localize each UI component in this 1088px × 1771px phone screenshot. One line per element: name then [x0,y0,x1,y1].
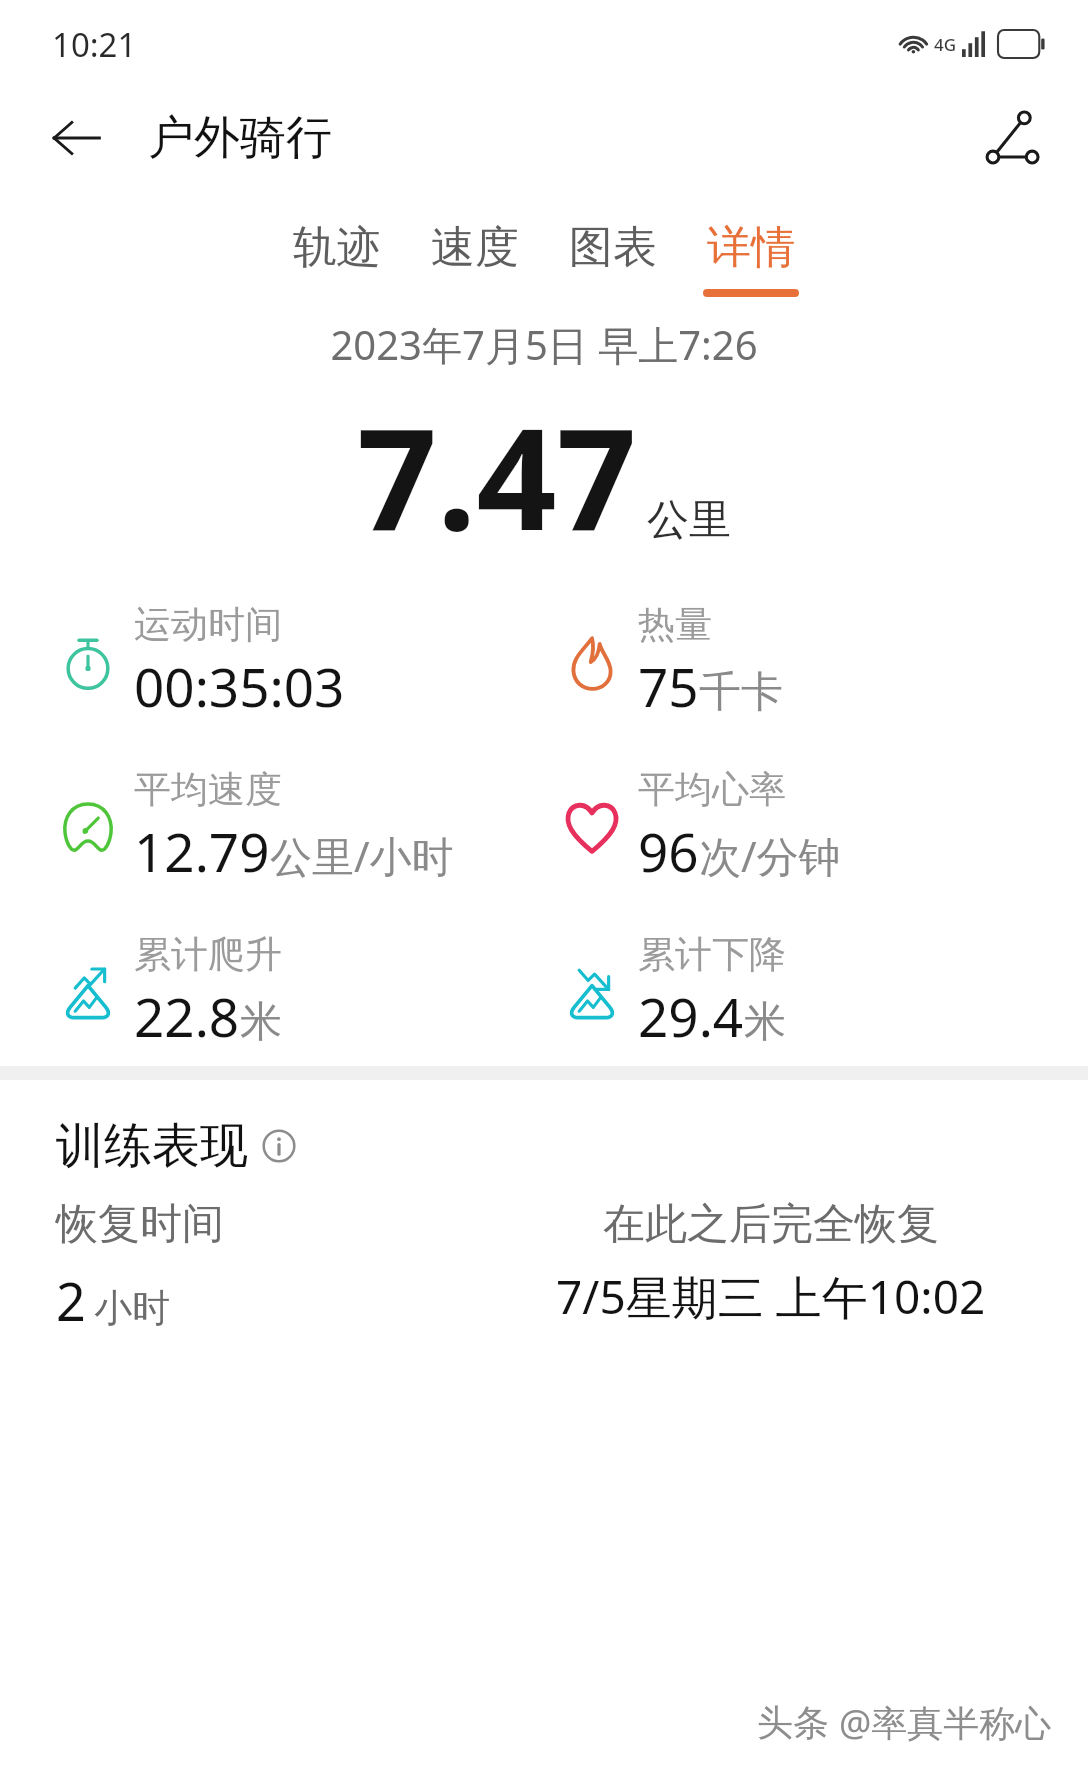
staticText: 2023年7月5日 早上7:26 [0,317,1088,372]
staticText: 米 [744,996,786,1049]
staticText: 2 [56,1265,86,1336]
staticText: @率真半称心 [839,1698,1052,1747]
staticText: 图表 [569,220,657,275]
staticText: 10:21 [52,22,137,67]
staticText: 米 [240,996,282,1049]
staticText: 轨迹 [293,220,381,275]
staticText: 在此之后完全恢复 [603,1198,939,1251]
staticText: 累计下降 [638,931,786,978]
staticText: 平均心率 [638,766,786,813]
button[interactable]: 运动时间 [56,601,345,722]
staticText: 户外骑行 [148,109,332,167]
button[interactable]: 累计下降 [560,931,786,1052]
staticText: 12.79 [134,815,270,887]
other: Info [262,1129,296,1163]
staticText: 累计爬升 [134,931,282,978]
staticText: 千卡 [699,666,783,719]
staticText: 29.4 [638,980,744,1052]
staticText: 平均速度 [134,766,282,813]
staticText: 训练表现 [56,1116,248,1176]
staticText: 头条 [757,1700,829,1745]
button[interactable]: 平均心率 [560,766,841,887]
button[interactable]: Share [974,100,1050,176]
staticText: 速度 [431,220,519,275]
staticText: 7.47 [357,380,637,571]
staticText: 小时 [94,1284,170,1332]
staticText: 公里/小时 [270,827,454,884]
staticText: 7/5星期三 上午10:02 [556,1265,986,1328]
staticText: 公里 [647,494,731,547]
staticText: 运动时间 [134,601,282,648]
button[interactable]: 详情 [695,216,807,301]
staticText: 恢复时间 [56,1198,224,1251]
button[interactable]: 轨迹 [281,216,393,301]
staticText: 75 [638,650,699,722]
button[interactable]: 速度 [419,216,531,301]
staticText: 22.8 [134,980,240,1052]
staticText: 4G [934,33,957,56]
button[interactable]: Back [40,102,112,174]
button[interactable]: 图表 [557,216,669,301]
button[interactable]: 热量 [560,601,783,722]
button[interactable]: 累计爬升 [56,931,282,1052]
staticText: 详情 [707,220,795,275]
staticText: 热量 [638,601,712,648]
staticText: 次/分钟 [699,827,841,884]
staticText: 00:35:03 [134,650,345,722]
button[interactable]: 平均速度 [56,766,454,887]
button[interactable]: 训练表现 [56,1116,296,1176]
staticText: 96 [638,815,699,887]
